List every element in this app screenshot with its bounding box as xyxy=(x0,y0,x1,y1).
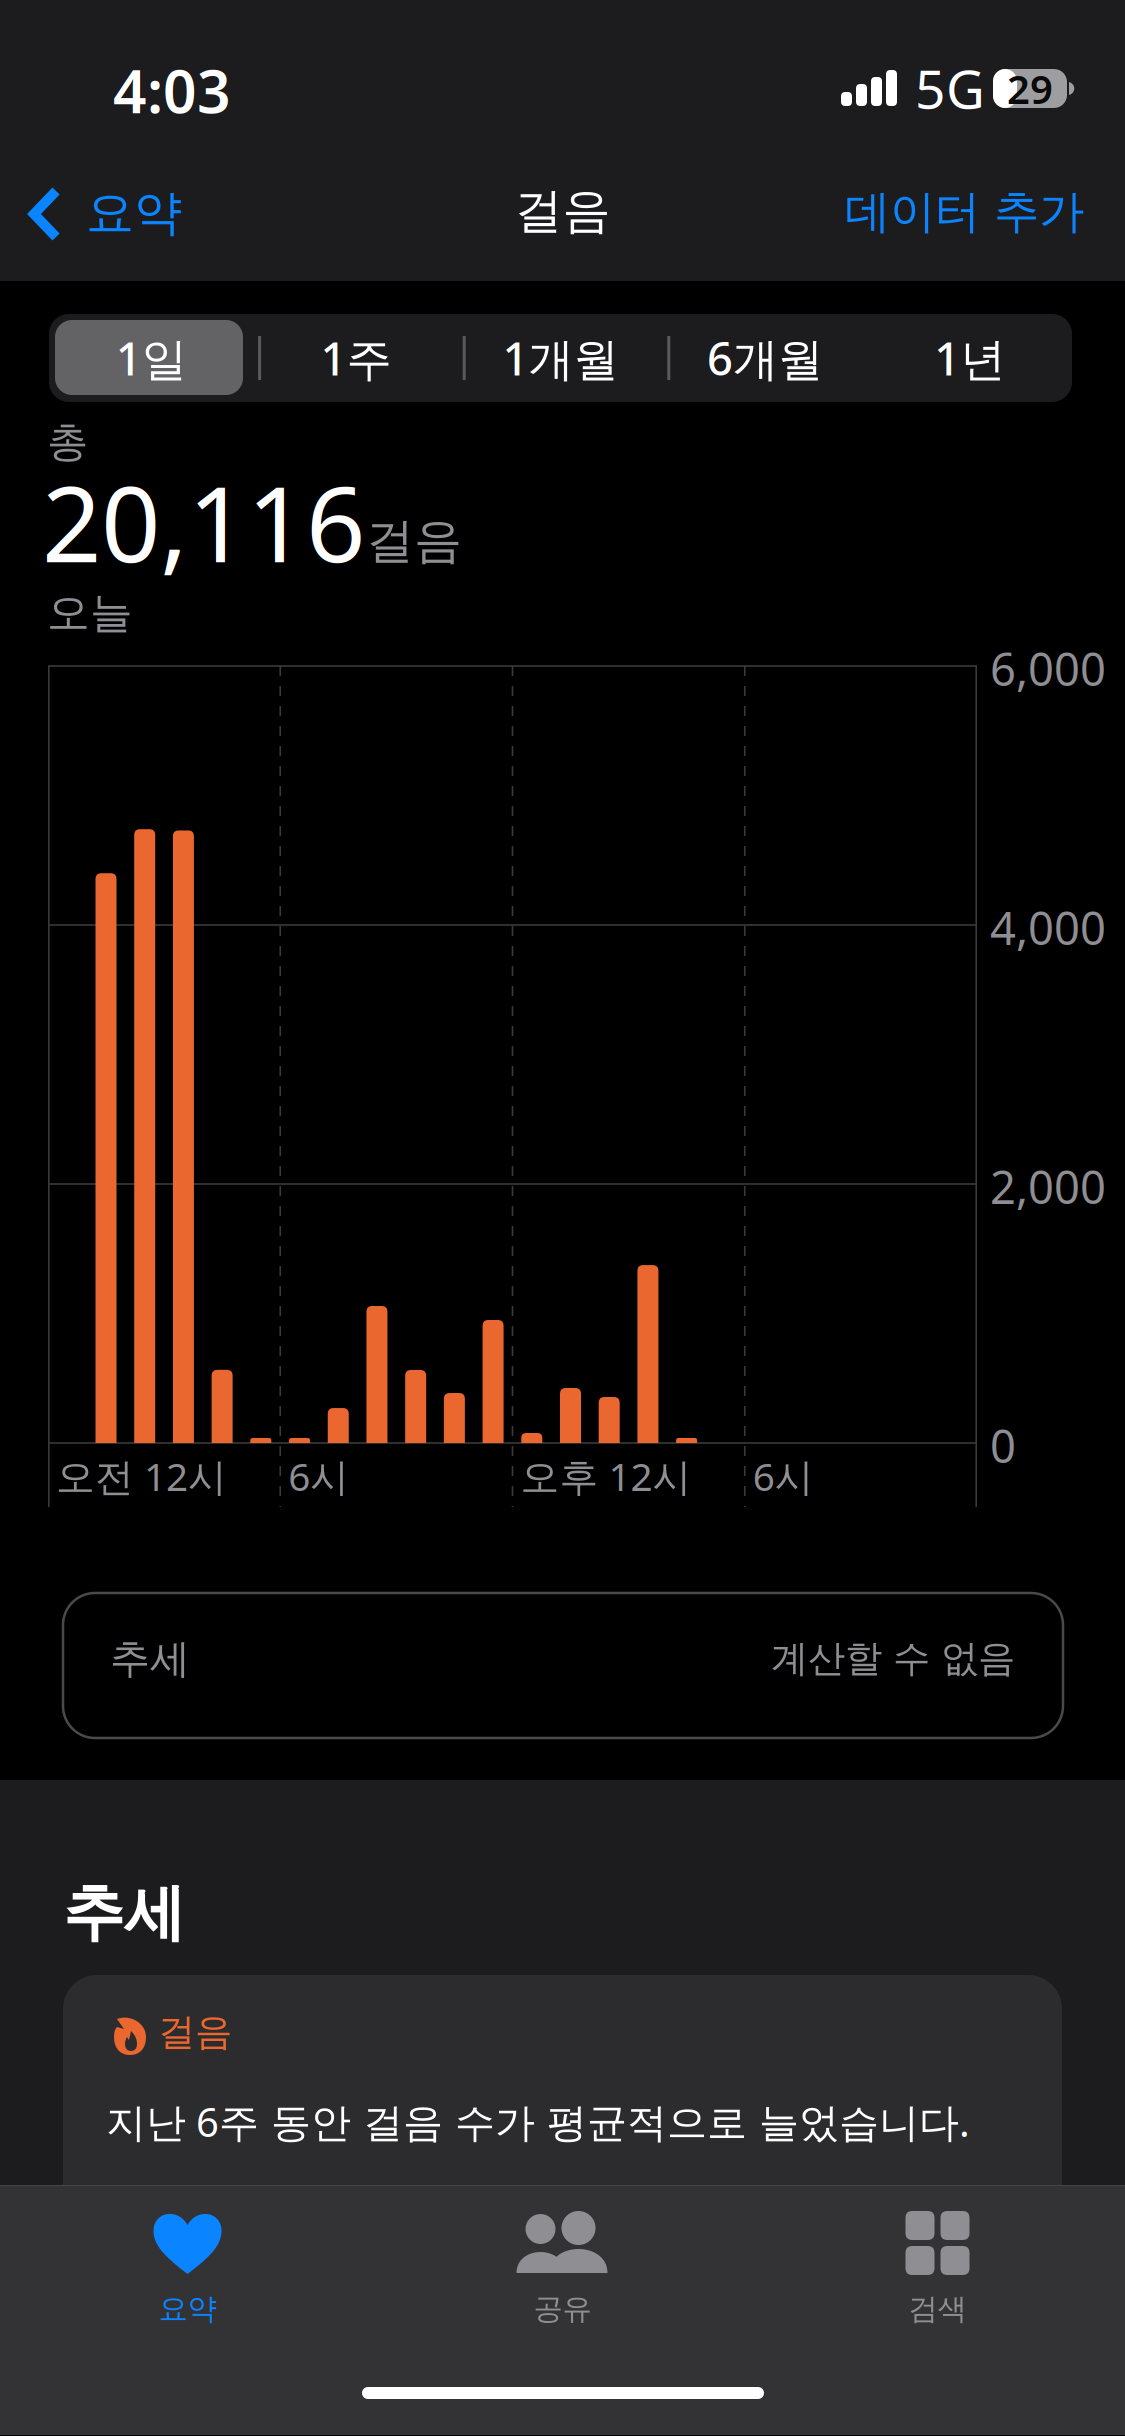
button[interactable]: 검색 xyxy=(750,2185,1125,2435)
staticText: 걸음 xyxy=(158,2009,232,2055)
staticText: 걸음 xyxy=(514,181,610,240)
staticText: 20,116 xyxy=(42,453,365,591)
button[interactable]: 1년 xyxy=(867,314,1072,402)
staticText: 1개월 xyxy=(502,328,618,388)
staticText: 계산할 수 없음 xyxy=(771,1636,1015,1681)
staticText: 6개월 xyxy=(707,328,823,388)
staticText: 6시 xyxy=(753,1450,814,1502)
button[interactable]: 데이터 추가 xyxy=(837,170,1103,254)
staticText: 요약 xyxy=(158,2291,216,2327)
staticText: 데이터 추가 xyxy=(845,184,1084,240)
staticText: 4,000 xyxy=(990,897,1106,958)
staticText: 5G xyxy=(915,53,985,123)
button[interactable]: 요약 xyxy=(0,2185,375,2435)
staticText: 검색 xyxy=(908,2291,966,2327)
staticText: 지난 6주 동안 걸음 수가 평균적으로 늘었습니다. xyxy=(106,2095,970,2148)
staticText: 오후 12시 xyxy=(520,1450,691,1502)
staticText: 0 xyxy=(990,1415,1016,1476)
button[interactable]: 공유 xyxy=(375,2185,750,2435)
staticText: 추세 xyxy=(63,1875,185,1951)
staticText: 1년 xyxy=(934,328,1005,388)
button[interactable]: 1일 xyxy=(49,314,254,402)
button[interactable]: 1개월 xyxy=(458,314,663,402)
staticText: 추세 xyxy=(110,1634,190,1683)
button[interactable]: 요약 xyxy=(18,171,198,261)
staticText: 공유 xyxy=(533,2291,591,2327)
staticText: 오전 12시 xyxy=(56,1450,227,1502)
staticText: 총 xyxy=(47,417,88,467)
staticText: 1주 xyxy=(320,328,391,388)
staticText: 걸음 xyxy=(366,511,462,570)
staticText: 2,000 xyxy=(990,1156,1106,1217)
button[interactable]: 6개월 xyxy=(663,314,867,402)
staticText: 6시 xyxy=(288,1450,349,1502)
staticText: 4:03 xyxy=(113,51,231,129)
staticText: 오늘 xyxy=(47,587,133,639)
button[interactable]: 1주 xyxy=(254,314,458,402)
staticText: 요약 xyxy=(86,183,182,242)
staticText: 29 xyxy=(1007,62,1053,115)
staticText: 1일 xyxy=(116,328,187,388)
staticText: 6,000 xyxy=(990,638,1106,699)
